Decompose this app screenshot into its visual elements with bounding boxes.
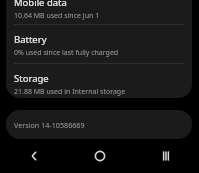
button[interactable]: Version 14-10586669 bbox=[6, 110, 192, 139]
staticText: Battery bbox=[14, 33, 47, 46]
button[interactable]: Home bbox=[67, 139, 133, 173]
staticText: 10.64 MB used since Jun 1 bbox=[14, 11, 100, 21]
staticText: Storage bbox=[14, 72, 49, 85]
staticText: 0% used since last fully charged bbox=[14, 48, 119, 58]
button[interactable]: Back bbox=[0, 139, 67, 173]
staticText: 21.88 MB used in Internal storage bbox=[14, 87, 126, 97]
staticText: Version 14-10586669 bbox=[14, 120, 85, 130]
button[interactable]: Battery bbox=[6, 25, 192, 63]
staticText: Mobile data bbox=[14, 0, 67, 9]
button[interactable]: Mobile data bbox=[6, 0, 192, 24]
button[interactable]: Recent apps bbox=[133, 139, 199, 173]
button[interactable]: Storage bbox=[6, 64, 192, 98]
